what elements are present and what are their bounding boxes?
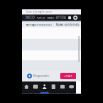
- staticText: Nuevo contenido: [55, 23, 79, 26]
- button[interactable]: More: [67, 81, 76, 93]
- button[interactable]: FOROS: [37, 16, 45, 19]
- button[interactable]: Media: [58, 81, 67, 93]
- button[interactable]: Profile: [40, 81, 49, 93]
- staticText: Responder: [33, 74, 49, 78]
- button[interactable]: Address bar: [22, 9, 81, 14]
- button[interactable]: INICIO: [25, 16, 34, 19]
- staticText: FOROS: [37, 16, 45, 19]
- button[interactable]: Articles: [49, 81, 58, 93]
- button[interactable]: Thread 2: [22, 39, 81, 50]
- button[interactable]: Search: [68, 16, 71, 19]
- staticText: foro.ejemplo.com: [26, 10, 51, 14]
- button[interactable]: Thread 3: [22, 50, 81, 60]
- button[interactable]: Home: [22, 81, 31, 93]
- button[interactable]: Nuevo contenido: [55, 23, 79, 26]
- staticText: Mensajes recientes: [25, 23, 51, 26]
- button[interactable]: Account: [73, 15, 78, 20]
- staticText: TEMAS: [47, 16, 54, 19]
- staticText: AYUDA: [56, 16, 66, 19]
- staticText: CREAR: [64, 74, 73, 78]
- button[interactable]: CREAR: [60, 73, 76, 79]
- button[interactable]: Forums: [31, 81, 40, 93]
- button[interactable]: Thread 1: [22, 27, 81, 39]
- button[interactable]: TEMAS: [47, 16, 54, 19]
- button[interactable]: Mensajes recientes: [25, 23, 51, 26]
- staticText: INICIO: [25, 16, 34, 19]
- button[interactable]: AYUDA: [56, 16, 66, 19]
- button[interactable]: Responder: [27, 73, 49, 78]
